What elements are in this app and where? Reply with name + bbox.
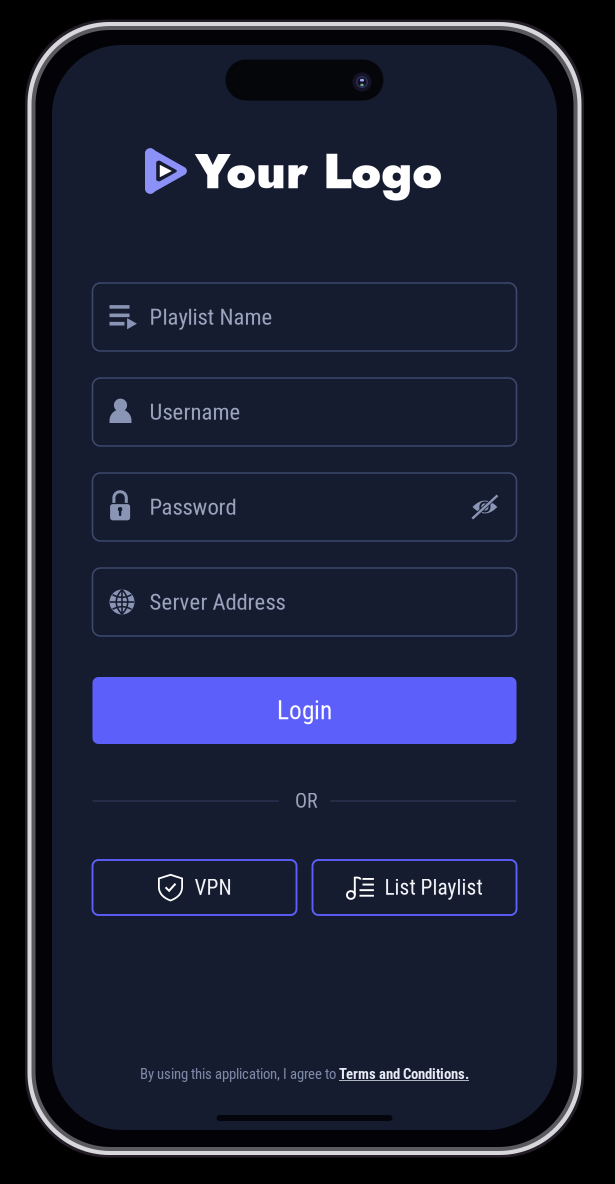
staticText: Server Address — [149, 589, 285, 615]
staticText: Username — [149, 399, 240, 425]
staticText: Password — [149, 494, 236, 520]
staticText: By using this application, I agree to — [140, 1065, 339, 1083]
button[interactable]: Password — [92, 473, 516, 541]
staticText: Login — [277, 696, 332, 725]
staticText: Terms and Conditions. — [339, 1065, 469, 1083]
button[interactable]: List Playlist — [312, 860, 516, 915]
staticText: Your Logo — [195, 135, 442, 207]
button[interactable]: Playlist Name — [92, 283, 516, 351]
staticText: List Playlist — [384, 875, 482, 900]
staticText: OR — [295, 789, 318, 813]
staticText: VPN — [194, 875, 231, 900]
staticText: Playlist Name — [149, 304, 272, 330]
button[interactable]: Terms and Conditions. — [339, 1065, 469, 1083]
button[interactable]: Username — [92, 378, 516, 446]
button[interactable]: Server Address — [92, 568, 516, 636]
button[interactable]: Login — [92, 677, 516, 744]
button[interactable]: VPN — [92, 860, 296, 915]
